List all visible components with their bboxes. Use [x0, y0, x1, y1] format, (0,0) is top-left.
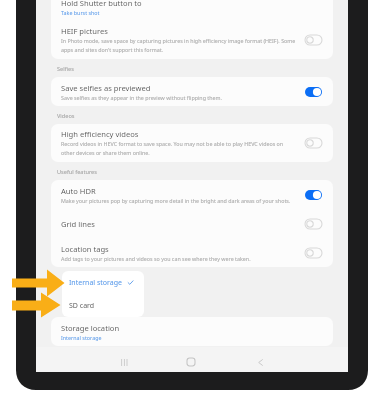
staticText: Record videos in HEVC format to save spa…: [61, 140, 297, 157]
button[interactable]: Auto HDR: [51, 180, 333, 209]
button[interactable]: HEIF pictures: [51, 21, 333, 59]
staticText: HEIF pictures: [61, 26, 108, 36]
staticText: Internal storage: [69, 278, 122, 288]
staticText: Make your pictures pop by capturing more…: [61, 197, 291, 204]
staticText: SD card: [69, 301, 95, 311]
button[interactable]: Turn on: [305, 138, 322, 148]
staticText: Save selfies as they appear in the previ…: [61, 94, 223, 101]
button[interactable]: Hold Shutter button to: [51, 0, 333, 21]
staticText: Videos: [57, 112, 75, 120]
staticText: Save selfies as previewed: [61, 83, 151, 93]
staticText: Internal storage: [61, 334, 102, 341]
button[interactable]: Turn on: [305, 248, 322, 258]
button[interactable]: Turn off: [305, 87, 322, 97]
button[interactable]: Save selfies as previewed: [51, 77, 333, 106]
button[interactable]: Storage location: [51, 317, 333, 346]
button[interactable]: Turn on: [305, 219, 322, 229]
button[interactable]: Turn off: [305, 190, 322, 200]
button[interactable]: Back: [250, 352, 270, 372]
staticText: High efficiency videos: [61, 129, 139, 139]
button[interactable]: Home: [181, 352, 201, 372]
staticText: Storage location: [61, 323, 120, 333]
button[interactable]: Location tags: [51, 238, 333, 267]
staticText: Auto HDR: [61, 186, 96, 196]
button[interactable]: High efficiency videos: [51, 124, 333, 162]
staticText: Location tags: [61, 244, 109, 254]
staticText: Hold Shutter button to: [61, 0, 142, 8]
staticText: In Photo mode, save space by capturing p…: [61, 37, 297, 54]
staticText: Take burst shot: [61, 9, 100, 16]
staticText: Grid lines: [61, 219, 95, 229]
button[interactable]: Recents: [114, 352, 134, 372]
staticText: Selfies: [57, 65, 74, 73]
button[interactable]: Internal storage: [62, 271, 144, 294]
staticText: Add tags to your pictures and videos so …: [61, 255, 251, 262]
button[interactable]: Grid lines: [51, 209, 333, 238]
staticText: Useful features: [57, 168, 97, 176]
button[interactable]: Turn on: [305, 35, 322, 45]
button[interactable]: SD card: [62, 294, 144, 317]
